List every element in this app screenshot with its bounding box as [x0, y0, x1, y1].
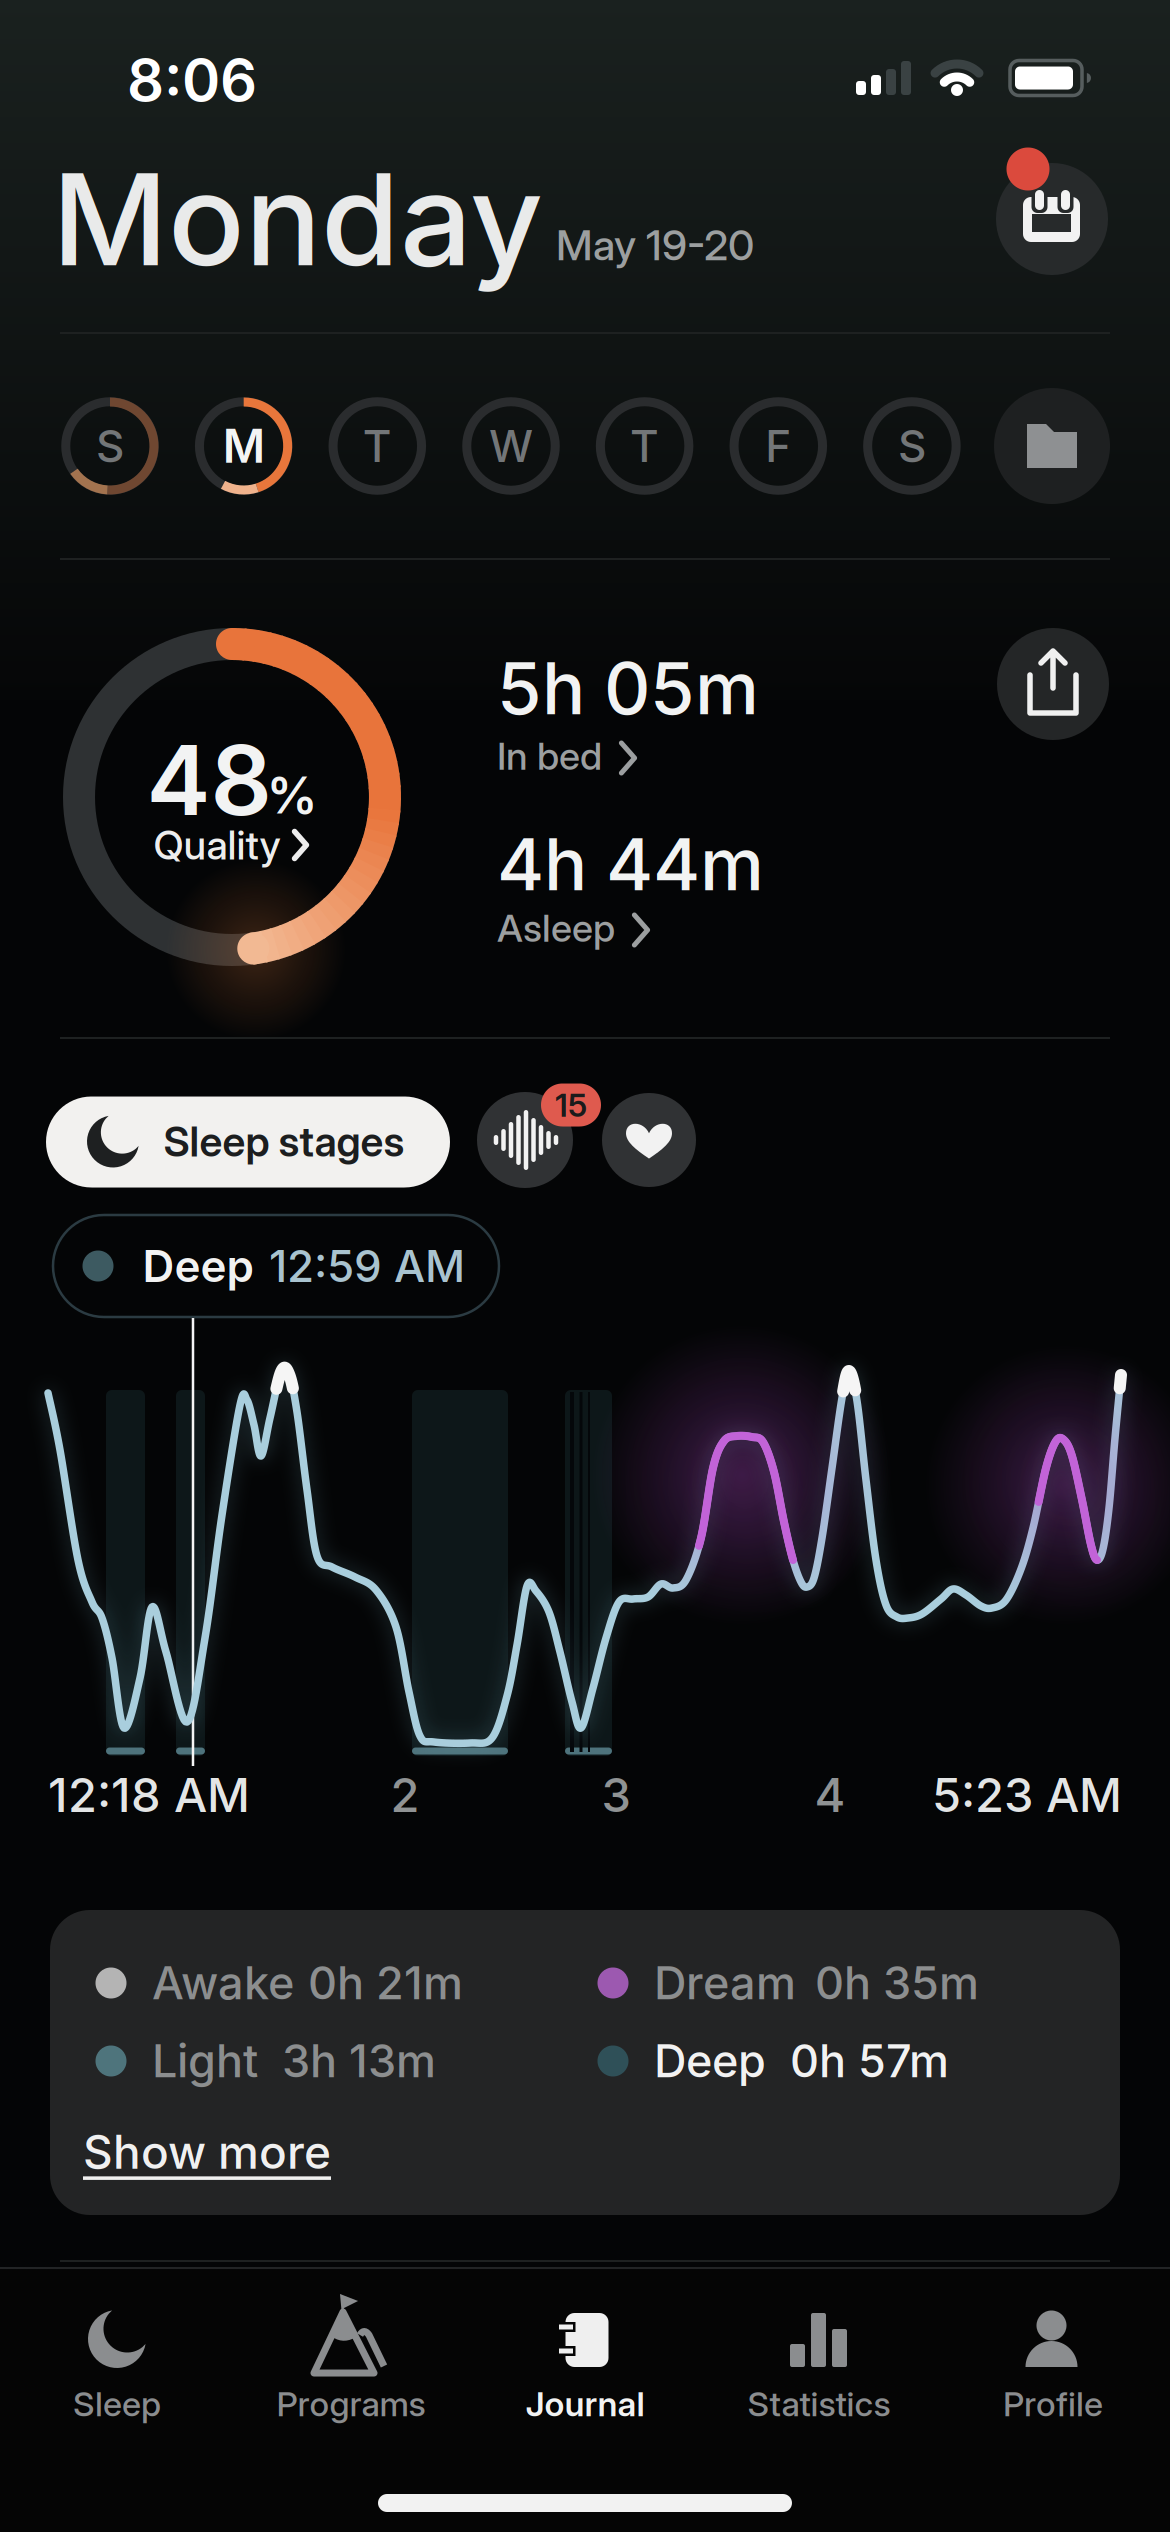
button[interactable]: Favorite [602, 1093, 696, 1187]
staticText: 0h 57m [790, 2034, 949, 2088]
button[interactable]: Sleep stages [46, 1096, 450, 1187]
staticText: Sleep [73, 2383, 161, 2424]
button[interactable]: Quality [153, 821, 312, 869]
staticText: W [489, 419, 533, 473]
staticText: Statistics [747, 2383, 890, 2424]
staticText: 4h 44m [497, 820, 764, 907]
staticText: % [266, 764, 317, 826]
staticText: 3h 13m [282, 2034, 436, 2088]
staticText: T [630, 419, 659, 473]
button[interactable]: Wednesday [462, 397, 559, 494]
staticText: 3 [601, 1767, 630, 1823]
button[interactable]: Profile [943, 2290, 1163, 2460]
staticText: 15 [555, 1086, 587, 1124]
button[interactable]: Programs [241, 2290, 461, 2460]
staticText: S [96, 419, 124, 473]
staticText: T [363, 419, 392, 473]
button[interactable]: Show more [83, 2124, 331, 2180]
button[interactable]: In bed [497, 733, 797, 779]
staticText: S [898, 419, 926, 473]
button[interactable]: Share [997, 628, 1109, 740]
staticText: Light [152, 2034, 258, 2088]
staticText: In bed [497, 733, 602, 779]
staticText: 12:59 AM [269, 1239, 465, 1293]
button[interactable]: Statistics [709, 2290, 929, 2460]
staticText: Deep [654, 2034, 766, 2088]
button[interactable]: Sleep [7, 2290, 227, 2460]
button[interactable]: Tuesday [329, 397, 426, 494]
staticText: 5h 05m [497, 644, 759, 731]
staticText: Journal [525, 2383, 644, 2424]
button[interactable]: Saturday [863, 397, 960, 494]
staticText: Monday [52, 142, 543, 296]
staticText: Show more [83, 2124, 331, 2180]
staticText: 0h 21m [308, 1956, 463, 2010]
button[interactable]: Thursday [596, 397, 693, 494]
staticText: Deep [142, 1239, 253, 1293]
button[interactable]: Friday [730, 397, 827, 494]
button[interactable]: Calendar [996, 163, 1108, 275]
button[interactable]: Sunday [61, 397, 158, 494]
staticText: Quality [153, 821, 280, 869]
staticText: May 19-20 [556, 220, 754, 270]
staticText: 2 [390, 1767, 419, 1823]
staticText: Dream [654, 1956, 796, 2010]
staticText: Asleep [497, 905, 615, 951]
staticText: Profile [1003, 2383, 1103, 2424]
staticText: 8:06 [127, 45, 257, 115]
button[interactable]: All nights [994, 388, 1110, 504]
staticText: Sleep stages [163, 1117, 404, 1166]
staticText: 4 [814, 1767, 845, 1823]
staticText: M [223, 418, 265, 474]
button[interactable]: Monday [195, 397, 292, 494]
staticText: 0h 35m [815, 1956, 979, 2010]
staticText: 48 [146, 722, 271, 838]
button[interactable]: Sleep sounds [477, 1092, 573, 1188]
staticText: Programs [276, 2383, 425, 2424]
staticText: 12:18 AM [48, 1767, 250, 1823]
staticText: F [765, 419, 791, 473]
staticText: Awake [152, 1956, 294, 2010]
button[interactable]: Journal [475, 2290, 695, 2460]
button[interactable]: Asleep [497, 905, 797, 951]
staticText: 5:23 AM [932, 1767, 1122, 1823]
